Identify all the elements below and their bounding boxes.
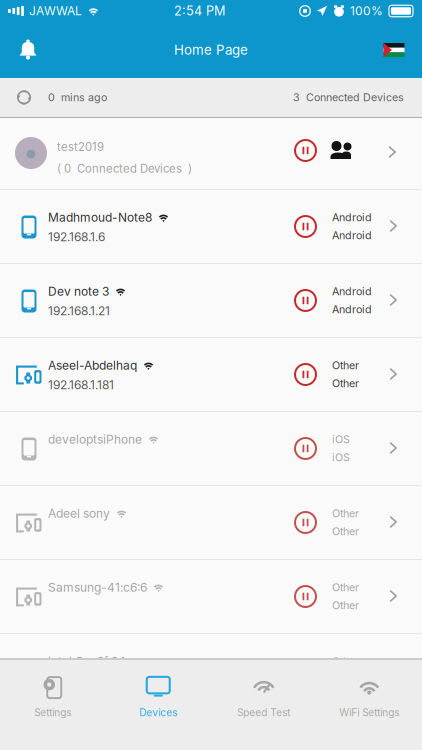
staticText: 192.168.1.21 [48, 303, 110, 318]
button[interactable]: HUAWEI-P20 [0, 708, 422, 750]
staticText: 2:54 PM [174, 3, 225, 19]
staticText: Intel Co-9f:94: [48, 654, 129, 668]
staticText: Other [332, 655, 359, 668]
staticText: Other [332, 599, 359, 612]
staticText: Other [332, 581, 359, 594]
button[interactable]: Adeel sony [0, 486, 422, 559]
staticText: Adeel sony [48, 506, 110, 520]
button[interactable]: Language [366, 22, 422, 78]
staticText: 0 mins ago [48, 91, 107, 104]
button[interactable]: Intel Co-9f:94: [0, 634, 422, 707]
button[interactable]: developtsiPhone [0, 412, 422, 485]
staticText: Android [332, 211, 372, 224]
button[interactable]: test2019 [0, 118, 422, 189]
staticText: Samsung-41:c6:6 [48, 580, 147, 594]
staticText: ( 0 Connected Devices ) [57, 162, 192, 175]
button[interactable]: Speed Test [211, 664, 316, 746]
staticText: iOS [332, 451, 350, 464]
staticText: Dev note 3 [48, 284, 109, 298]
button[interactable]: Samsung-41:c6:6 [0, 560, 422, 633]
staticText: 192.168.1.181 [48, 377, 114, 392]
button[interactable]: Notifications [0, 22, 56, 78]
staticText: iOS [332, 433, 350, 446]
staticText: test2019 [57, 140, 104, 154]
staticText: Home Page [174, 42, 248, 58]
staticText: 3 Connected Devices [293, 91, 404, 104]
button[interactable]: Dev note 3 [0, 264, 422, 337]
button[interactable]: Madhmoud-Note8 [0, 190, 422, 263]
button[interactable]: WiFi Settings [316, 664, 422, 746]
staticText: Aseel-Abdelhaq [48, 358, 137, 372]
staticText: Other [332, 377, 359, 390]
staticText: Other [332, 507, 359, 520]
staticText: Settings [34, 707, 71, 719]
staticText: Speed Test [237, 707, 290, 719]
staticText: Android [332, 229, 372, 242]
button[interactable]: Devices [105, 664, 211, 746]
staticText: WiFi Settings [339, 707, 399, 719]
staticText: 100% [350, 4, 383, 18]
staticText: JAWWAL [29, 4, 82, 18]
staticText: developtsiPhone [48, 432, 142, 446]
button[interactable]: Refresh [0, 78, 48, 117]
staticText: Madhmoud-Note8 [48, 210, 152, 224]
staticText: Devices [139, 707, 177, 719]
staticText: Android [332, 303, 372, 316]
staticText: 192.168.1.6 [48, 229, 105, 244]
staticText: Android [332, 285, 372, 298]
button[interactable]: Settings [0, 664, 105, 746]
staticText: Other [332, 525, 359, 538]
staticText: Other [332, 359, 359, 372]
button[interactable]: Aseel-Abdelhaq [0, 338, 422, 411]
